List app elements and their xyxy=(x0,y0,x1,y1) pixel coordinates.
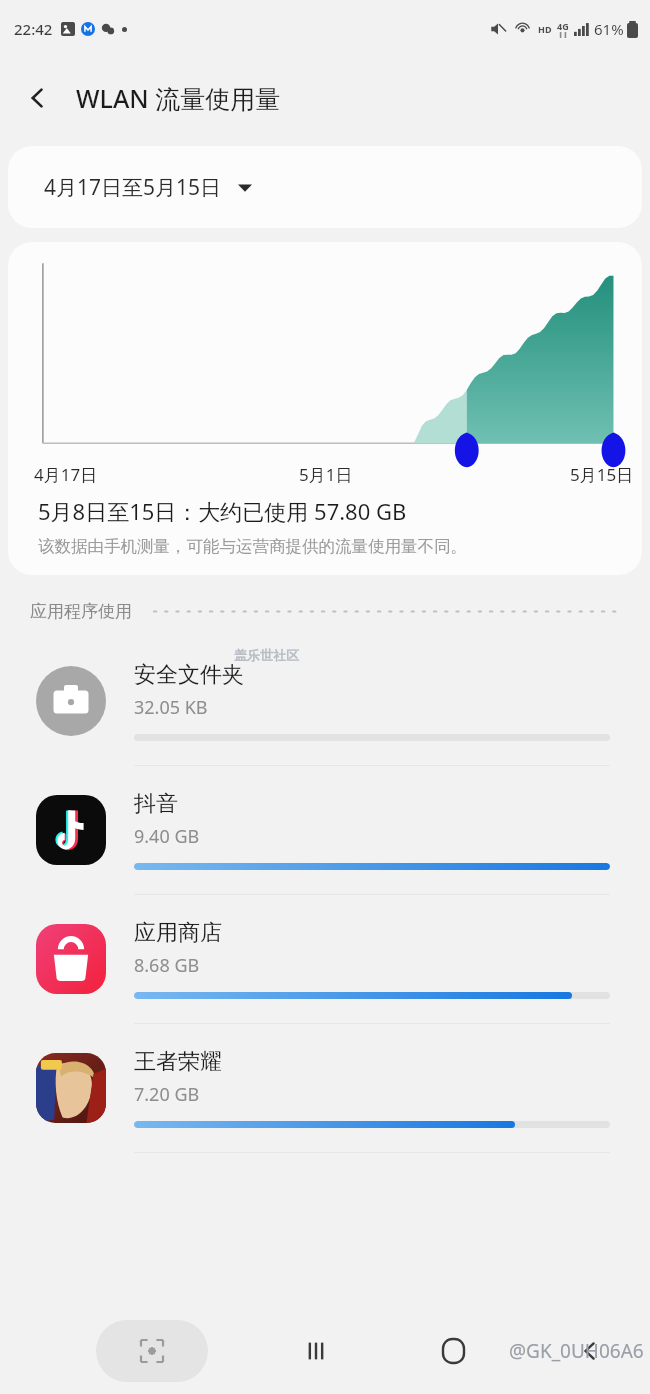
staticText: 22:42 xyxy=(14,19,53,39)
staticText: 5月15日 xyxy=(570,463,634,486)
button[interactable]: Back xyxy=(560,1321,620,1381)
staticText: 5月8日至15日：大约已使用 57.80 GB xyxy=(38,496,407,526)
staticText: 盖乐世社区 xyxy=(234,647,299,663)
button[interactable]: Home xyxy=(423,1321,483,1381)
staticText: WLAN 流量使用量 xyxy=(76,81,281,115)
button[interactable]: 抖音 xyxy=(0,766,650,895)
staticText: 9.40 GB xyxy=(134,824,200,849)
staticText: @GK_0UH06A6 xyxy=(509,1338,644,1364)
button[interactable]: Screenshot xyxy=(96,1320,208,1382)
button[interactable]: 王者荣耀 xyxy=(0,1024,650,1153)
staticText: 抖音 xyxy=(134,790,178,818)
staticText: 王者荣耀 xyxy=(134,1048,222,1076)
staticText: 应用商店 xyxy=(134,919,222,947)
staticText: 4G xyxy=(557,20,569,32)
button[interactable]: Back xyxy=(12,72,64,124)
staticText: 该数据由手机测量，可能与运营商提供的流量使用量不同。 xyxy=(38,536,467,557)
button[interactable]: 4月17日至5月15日 xyxy=(8,146,642,228)
staticText: 7.20 GB xyxy=(134,1082,200,1107)
staticText: 61% xyxy=(594,19,624,39)
staticText: 32.05 KB xyxy=(134,695,208,720)
staticText: 5月1日 xyxy=(299,463,353,486)
button[interactable]: Recents xyxy=(286,1321,346,1381)
staticText: HD xyxy=(538,23,552,35)
staticText: 4月17日至5月15日 xyxy=(44,173,222,202)
button[interactable]: 安全文件夹 xyxy=(0,637,650,766)
staticText: 4月17日 xyxy=(34,463,98,486)
staticText: 安全文件夹 xyxy=(134,661,244,689)
button[interactable]: 应用商店 xyxy=(0,895,650,1024)
staticText: 8.68 GB xyxy=(134,953,200,978)
staticText: 应用程序使用 xyxy=(30,601,132,622)
